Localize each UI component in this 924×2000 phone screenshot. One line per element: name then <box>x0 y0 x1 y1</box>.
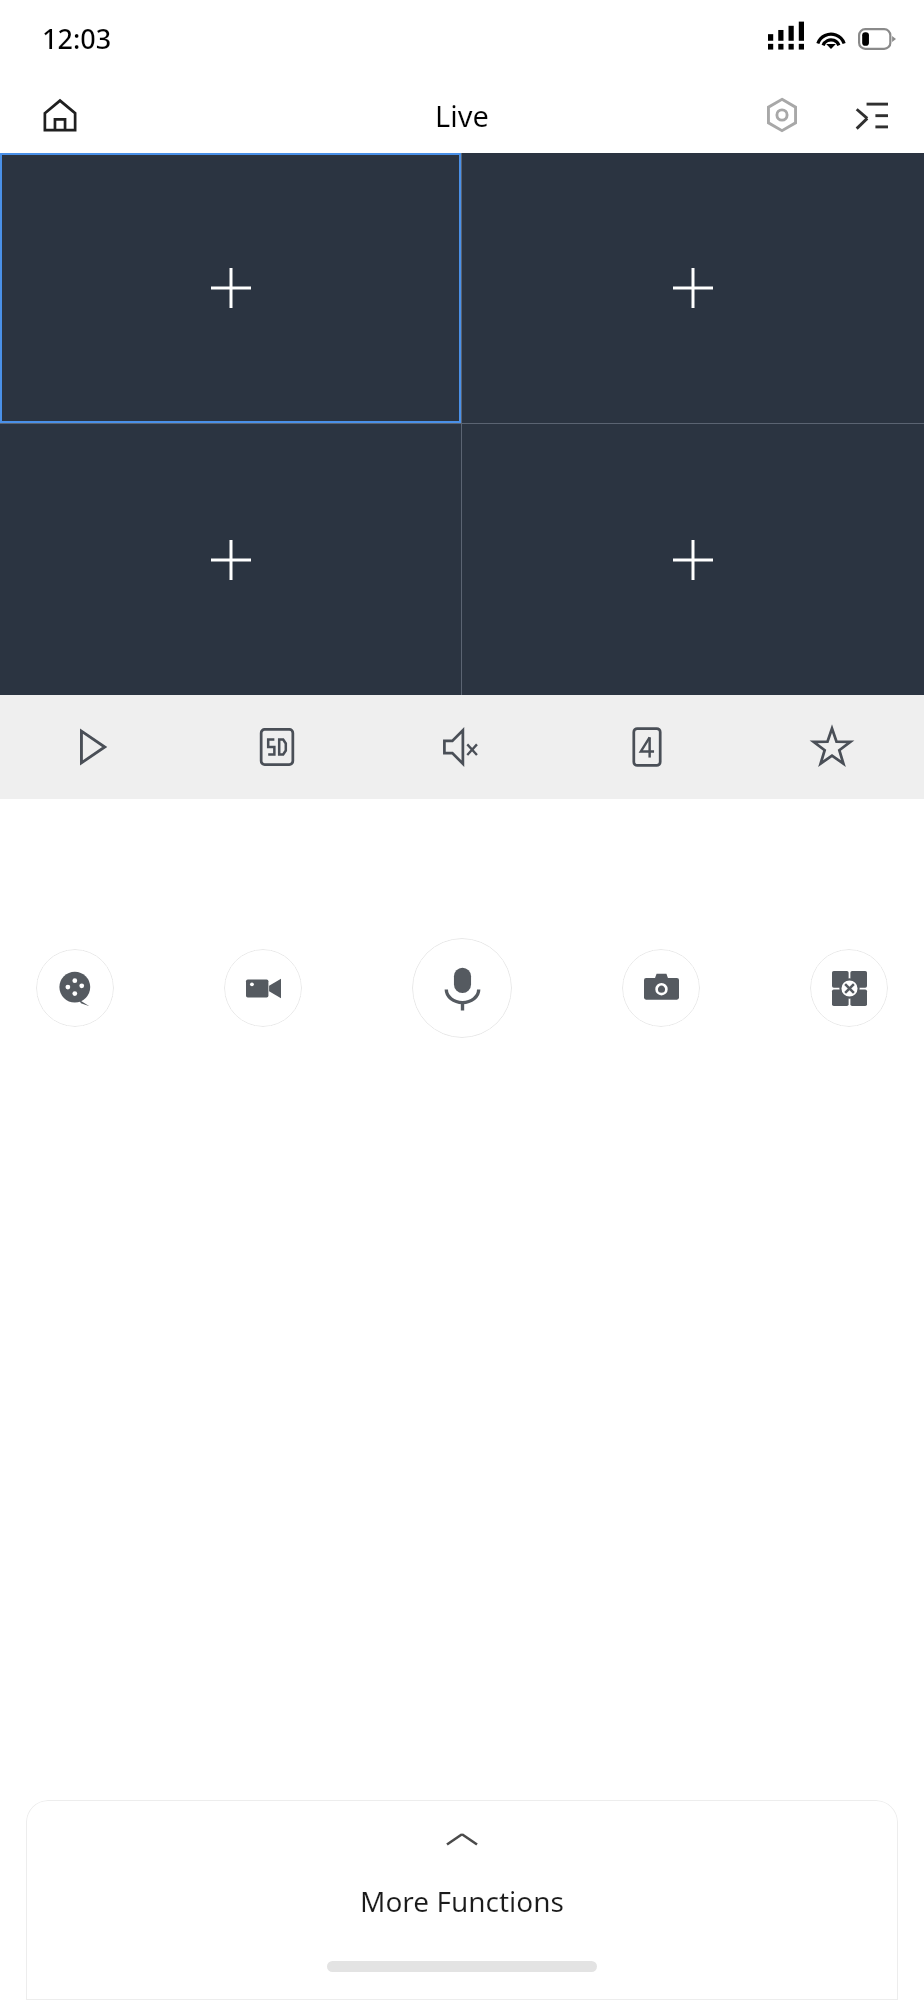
button[interactable]: Record <box>224 949 302 1027</box>
button[interactable]: Add camera <box>462 424 924 695</box>
button[interactable]: Add camera <box>462 153 924 423</box>
button[interactable]: Add camera <box>0 153 461 423</box>
staticText: Live <box>435 96 489 135</box>
button[interactable]: Stream quality SD <box>184 695 369 799</box>
button[interactable]: Device <box>754 87 810 143</box>
button[interactable]: Home <box>34 89 86 141</box>
button[interactable]: Mute <box>369 695 554 799</box>
button[interactable]: Add camera <box>0 424 461 695</box>
button[interactable]: Snapshot <box>622 949 700 1027</box>
button[interactable]: Talk <box>412 938 512 1038</box>
button[interactable]: Channel list <box>844 87 900 143</box>
button[interactable]: Play <box>0 695 184 799</box>
staticText: More Functions <box>360 1882 564 1920</box>
button[interactable]: Favorite <box>739 695 924 799</box>
button[interactable]: Split 4 <box>554 695 739 799</box>
button[interactable]: PTZ <box>810 949 888 1027</box>
button[interactable]: More Functions <box>26 1800 898 2000</box>
button[interactable]: Playback <box>36 949 114 1027</box>
staticText: 12:03 <box>42 20 112 57</box>
